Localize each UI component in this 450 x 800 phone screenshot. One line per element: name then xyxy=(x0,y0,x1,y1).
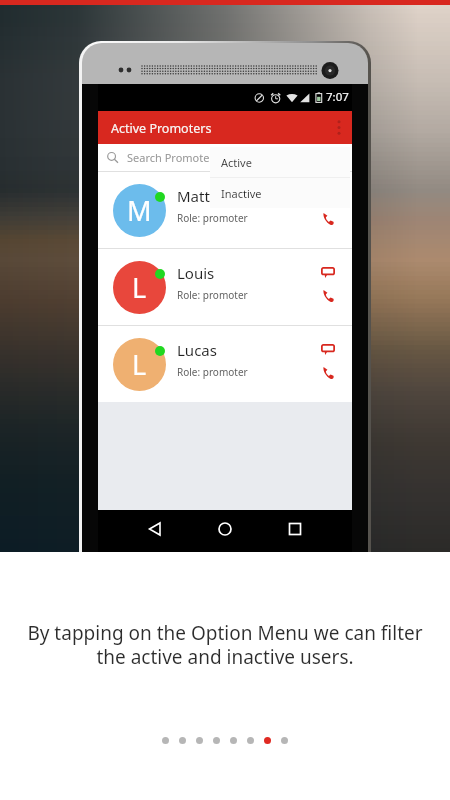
button[interactable]: Call xyxy=(318,286,338,306)
button[interactable] xyxy=(213,737,220,744)
staticText: L xyxy=(132,346,147,383)
button[interactable]: L xyxy=(98,249,352,325)
button[interactable]: L xyxy=(98,326,352,402)
button[interactable]: More options xyxy=(326,111,352,144)
button[interactable]: Message xyxy=(318,339,338,359)
button[interactable]: Search Promoters xyxy=(98,144,352,171)
staticText: Lucas xyxy=(177,340,217,360)
button[interactable]: Message xyxy=(318,262,338,282)
staticText: Role: promoter xyxy=(177,365,248,379)
button[interactable] xyxy=(230,737,237,744)
staticText: Search Promoters xyxy=(127,150,220,165)
staticText: Active Promoters xyxy=(111,120,326,137)
button[interactable] xyxy=(247,737,254,744)
button[interactable] xyxy=(162,737,169,744)
staticText: Role: promoter xyxy=(177,211,248,225)
button[interactable]: Active xyxy=(210,147,350,177)
staticText: Role: promoter xyxy=(177,288,248,302)
staticText: M xyxy=(127,192,152,229)
button[interactable]: M xyxy=(98,172,352,248)
button[interactable] xyxy=(264,737,271,744)
staticText: Inactive xyxy=(221,186,262,201)
staticText: By tapping on the Option Menu we can fil… xyxy=(27,620,423,669)
staticText: 7:07 xyxy=(326,89,349,105)
staticText: Active xyxy=(221,155,252,170)
staticText: Louis xyxy=(177,263,215,283)
button[interactable]: Call xyxy=(318,209,338,229)
button[interactable] xyxy=(281,737,288,744)
button[interactable] xyxy=(179,737,186,744)
button[interactable]: Inactive xyxy=(210,178,350,208)
staticText: Matthew xyxy=(177,186,240,206)
button[interactable]: Call xyxy=(318,363,338,383)
button[interactable] xyxy=(196,737,203,744)
staticText: L xyxy=(132,269,147,306)
